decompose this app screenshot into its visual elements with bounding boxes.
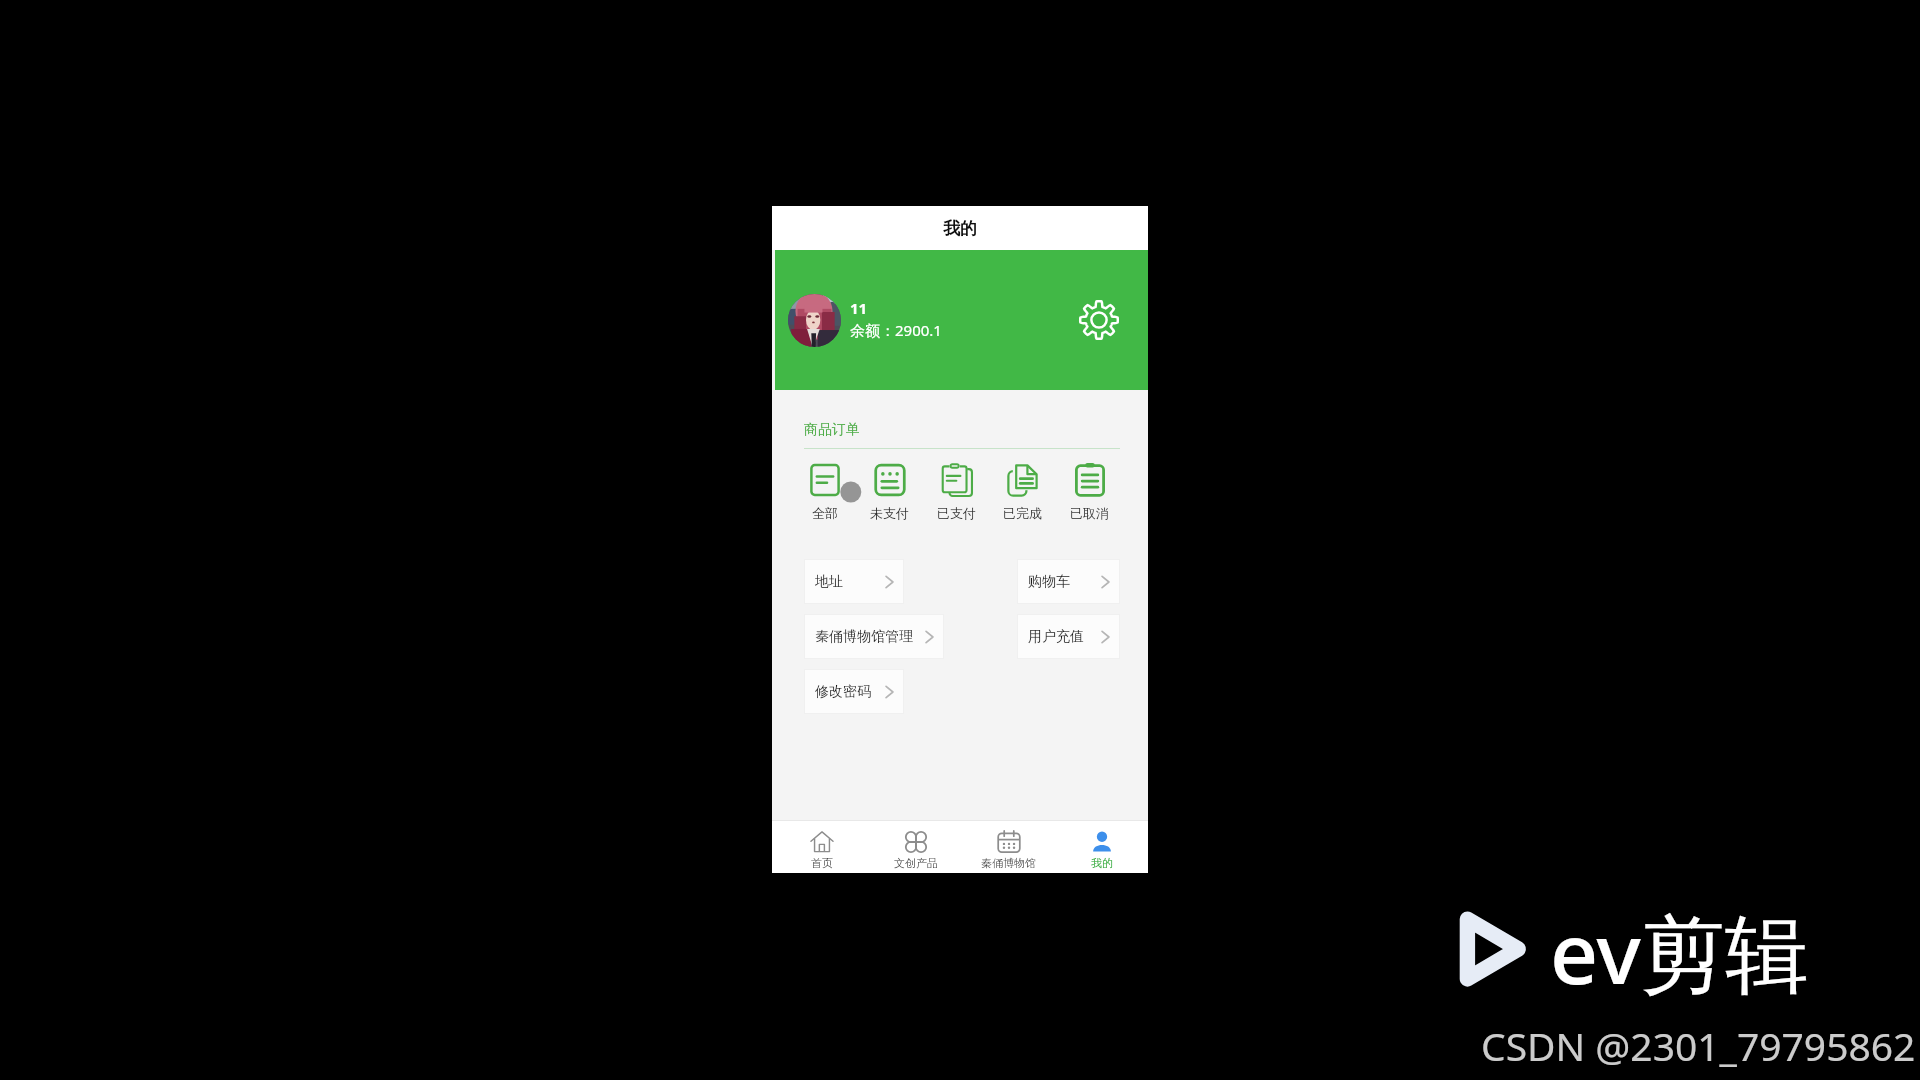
button[interactable]: 首页 (775, 821, 869, 873)
staticText: 已完成 (1003, 505, 1042, 521)
button[interactable]: 用户充值 (1017, 614, 1120, 659)
staticText: 我的 (943, 218, 977, 239)
button[interactable]: 已完成 (1003, 463, 1042, 521)
staticText: 未支付 (870, 505, 909, 521)
button[interactable]: Settings (1079, 300, 1119, 340)
staticText: 已取消 (1070, 505, 1109, 521)
staticText: 秦俑博物馆 (981, 856, 1036, 870)
staticText: 秦俑博物馆管理 (815, 628, 913, 646)
staticText: 余额：2900.1 (850, 320, 942, 340)
staticText: 首页 (811, 856, 833, 870)
button[interactable]: 购物车 (1017, 559, 1120, 604)
staticText: 11 (850, 298, 868, 318)
button[interactable]: 文创产品 (869, 821, 962, 873)
button[interactable]: 我的 (1055, 821, 1148, 873)
staticText: 我的 (1091, 856, 1113, 870)
staticText: 修改密码 (815, 683, 871, 701)
button[interactable]: 已取消 (1070, 463, 1109, 521)
staticText: 文创产品 (894, 856, 938, 870)
staticText: 已支付 (937, 505, 976, 521)
staticText: ev剪辑 (1550, 894, 1809, 1009)
button[interactable]: 修改密码 (804, 669, 904, 714)
button[interactable]: 全部 (808, 463, 842, 521)
button[interactable]: 未支付 (870, 463, 909, 521)
button[interactable]: 秦俑博物馆 (962, 821, 1055, 873)
button[interactable]: 秦俑博物馆管理 (804, 614, 944, 659)
staticText: 购物车 (1028, 573, 1070, 591)
button[interactable]: 地址 (804, 559, 904, 604)
staticText: 用户充值 (1028, 628, 1084, 646)
button[interactable]: 已支付 (937, 463, 976, 521)
staticText: 商品订单 (804, 421, 860, 439)
staticText: 全部 (812, 505, 838, 521)
staticText: 地址 (815, 573, 843, 591)
staticText: CSDN @2301_79795862 (1481, 1019, 1916, 1072)
